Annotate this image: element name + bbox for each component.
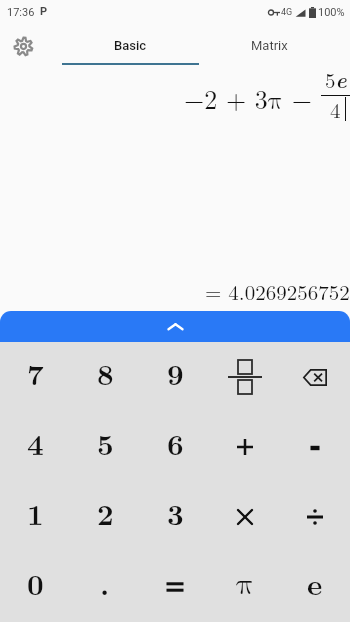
button[interactable] <box>140 552 210 622</box>
button[interactable]: Expand keypad <box>0 311 350 342</box>
staticText: 6 <box>167 422 184 463</box>
staticText: 4G <box>281 7 293 18</box>
staticText: e <box>307 562 323 603</box>
staticText: −2 + 3π − <box>184 80 321 117</box>
button[interactable] <box>210 482 280 552</box>
staticText: Matrix <box>251 38 288 53</box>
button[interactable]: . <box>70 552 140 622</box>
staticText: 9 <box>167 352 184 393</box>
staticText: 3 <box>167 492 184 533</box>
staticText: P <box>40 5 48 18</box>
staticText: 17:36 <box>7 6 35 19</box>
staticText: . <box>100 562 110 603</box>
staticText: 7 <box>27 352 44 393</box>
button[interactable]: 3 <box>140 482 210 552</box>
staticText: Basic <box>114 38 147 53</box>
staticText: 0 <box>27 562 44 603</box>
staticText: 2 <box>97 492 114 533</box>
button[interactable]: 0 <box>0 552 70 622</box>
button[interactable] <box>280 482 350 552</box>
button[interactable]: 1 <box>0 482 70 552</box>
button[interactable] <box>280 412 350 482</box>
button[interactable]: Backspace <box>280 342 350 412</box>
other: Fraction <box>226 359 264 395</box>
button[interactable]: 9 <box>140 342 210 412</box>
button[interactable]: π <box>210 552 280 622</box>
button[interactable] <box>210 412 280 482</box>
button[interactable]: 8 <box>70 342 140 412</box>
staticText: 100% <box>318 6 345 19</box>
staticText: π <box>236 569 255 600</box>
button[interactable]: e <box>280 552 350 622</box>
button[interactable]: 6 <box>140 412 210 482</box>
staticText: 8 <box>97 352 114 393</box>
staticText: = 4.0269256752 <box>205 276 350 306</box>
button[interactable]: Fraction <box>210 342 280 412</box>
button[interactable]: 5 <box>70 412 140 482</box>
staticText: 5e <box>325 64 347 95</box>
staticText: 4 <box>27 422 44 463</box>
button[interactable]: 4 <box>0 412 70 482</box>
button[interactable]: 2 <box>70 482 140 552</box>
staticText: 5 <box>97 422 114 463</box>
staticText: 4 <box>330 94 341 124</box>
button[interactable]: Basic <box>61 25 200 66</box>
other: Backspace <box>303 369 327 386</box>
button[interactable]: 7 <box>0 342 70 412</box>
button[interactable]: Settings <box>9 32 37 60</box>
button[interactable]: Matrix <box>200 25 339 66</box>
staticText: 1 <box>27 492 44 533</box>
